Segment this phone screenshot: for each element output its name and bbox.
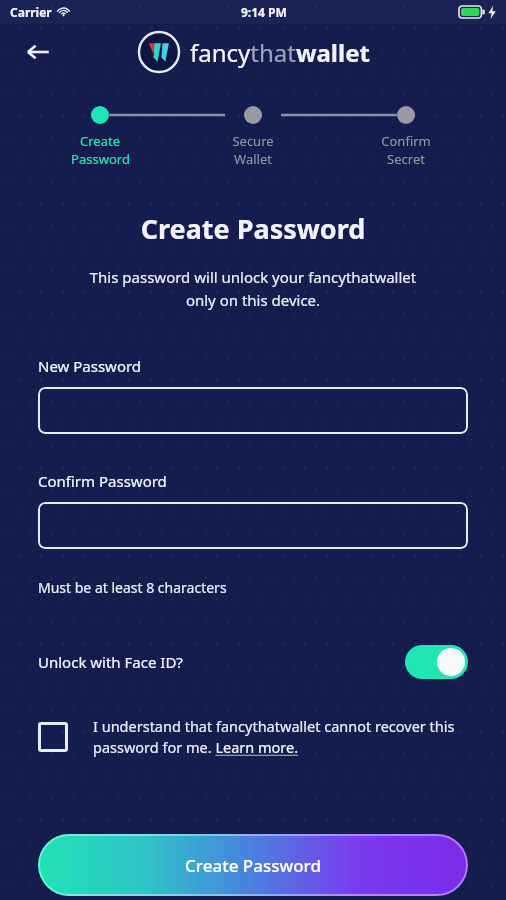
button[interactable]: Create Password — [38, 834, 468, 896]
staticText: Must be at least 8 characters — [38, 578, 227, 597]
button[interactable]: Unlock with Face ID? — [38, 645, 468, 679]
staticText: Create Password — [0, 210, 506, 247]
button[interactable]: Create — [24, 106, 176, 168]
staticText: Create — [80, 132, 120, 150]
button[interactable]: Back — [18, 32, 58, 72]
button[interactable] — [38, 502, 468, 549]
staticText: Password — [71, 150, 130, 168]
staticText: Secret — [387, 150, 425, 168]
button[interactable]: Secure — [176, 106, 329, 168]
staticText: fancythatwallet — [190, 36, 370, 69]
staticText: Create Password — [185, 854, 321, 877]
staticText: Wallet — [234, 150, 272, 168]
staticText: 9:14 PM — [241, 4, 287, 20]
button[interactable] — [38, 387, 468, 434]
staticText: I understand that fancythatwallet cannot… — [93, 716, 468, 758]
button[interactable]: I understand checkbox — [38, 716, 468, 758]
button[interactable]: Confirm — [329, 106, 482, 168]
staticText: New Password — [38, 356, 142, 376]
staticText: Unlock with Face ID? — [38, 652, 183, 672]
staticText: Carrier — [10, 4, 52, 20]
staticText: Secure — [232, 132, 274, 150]
button[interactable]: I understand checkbox — [38, 722, 68, 752]
button[interactable]: Unlock with Face ID toggle — [405, 645, 468, 679]
staticText: Confirm — [381, 132, 431, 150]
staticText: This password will unlock your fancythat… — [28, 267, 478, 310]
staticText: Confirm Password — [38, 471, 167, 491]
